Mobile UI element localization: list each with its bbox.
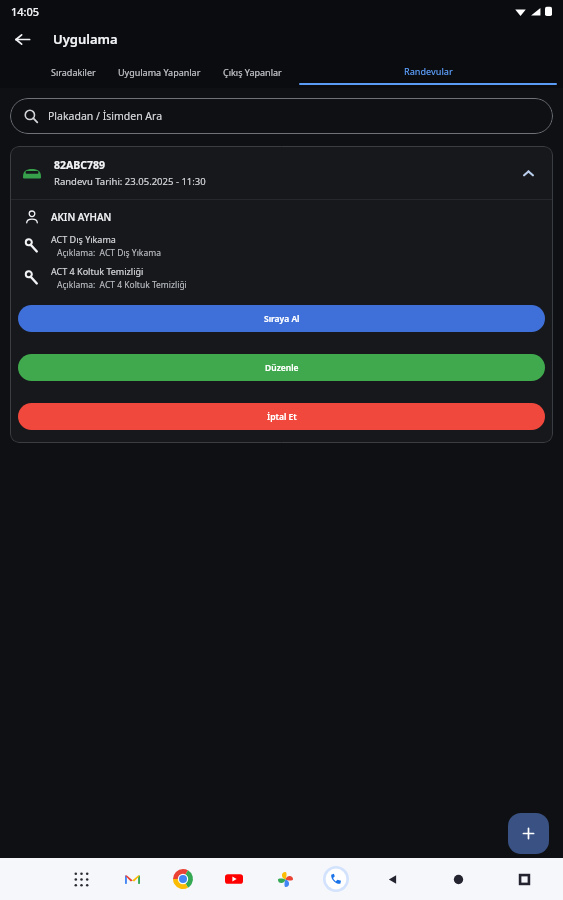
staticText: Sıradakiler xyxy=(51,66,96,78)
staticText: 82ABC789 xyxy=(54,158,106,172)
staticText: Plakadan / İsimden Ara xyxy=(48,109,163,123)
staticText: Sıraya Al xyxy=(264,313,300,325)
staticText: Açıklama: ACT 4 Koltuk Temizliği xyxy=(57,279,187,291)
staticText: Randevu Tarihi: 23.05.2025 - 11:30 xyxy=(54,175,206,188)
staticText: AKIN AYHAN xyxy=(51,210,112,224)
button[interactable]: Back xyxy=(8,25,36,53)
button[interactable]: Uygulama Yapanlar xyxy=(107,56,212,88)
staticText: Uygulama Yapanlar xyxy=(118,66,201,78)
staticText: Çıkış Yapanlar xyxy=(223,66,282,78)
button[interactable]: Gmail xyxy=(117,864,147,894)
staticText: Düzenle xyxy=(265,362,299,374)
button[interactable]: İptal Et xyxy=(18,403,545,430)
button[interactable]: Back xyxy=(377,864,407,894)
staticText: Açıklama: ACT Dış Yıkama xyxy=(57,247,161,259)
staticText: Randevular xyxy=(404,65,453,77)
button[interactable]: Sıradakiler xyxy=(40,56,107,88)
button[interactable]: Sıraya Al xyxy=(18,305,545,332)
button[interactable]: Home xyxy=(443,864,473,894)
button[interactable]: Plakadan / İsimden Ara xyxy=(10,98,553,134)
button[interactable]: Düzenle xyxy=(18,354,545,381)
button[interactable]: Chrome xyxy=(168,864,198,894)
button[interactable]: Recents xyxy=(509,864,539,894)
button[interactable]: Collapse xyxy=(515,160,541,186)
staticText: 14:05 xyxy=(11,4,40,19)
button[interactable]: Çıkış Yapanlar xyxy=(212,56,293,88)
staticText: ACT Dış Yıkama xyxy=(51,233,116,245)
button[interactable]: Add xyxy=(508,813,549,854)
staticText: İptal Et xyxy=(267,411,297,423)
staticText: Uygulama xyxy=(53,30,118,48)
button[interactable]: Randevular xyxy=(293,56,563,88)
staticText: ACT 4 Koltuk Temizliği xyxy=(51,265,144,277)
button[interactable]: Phone xyxy=(321,864,351,894)
button[interactable]: YouTube xyxy=(219,864,249,894)
button[interactable]: 82ABC789 xyxy=(10,146,553,199)
button[interactable]: Photos xyxy=(270,864,300,894)
button[interactable]: Apps xyxy=(66,864,96,894)
